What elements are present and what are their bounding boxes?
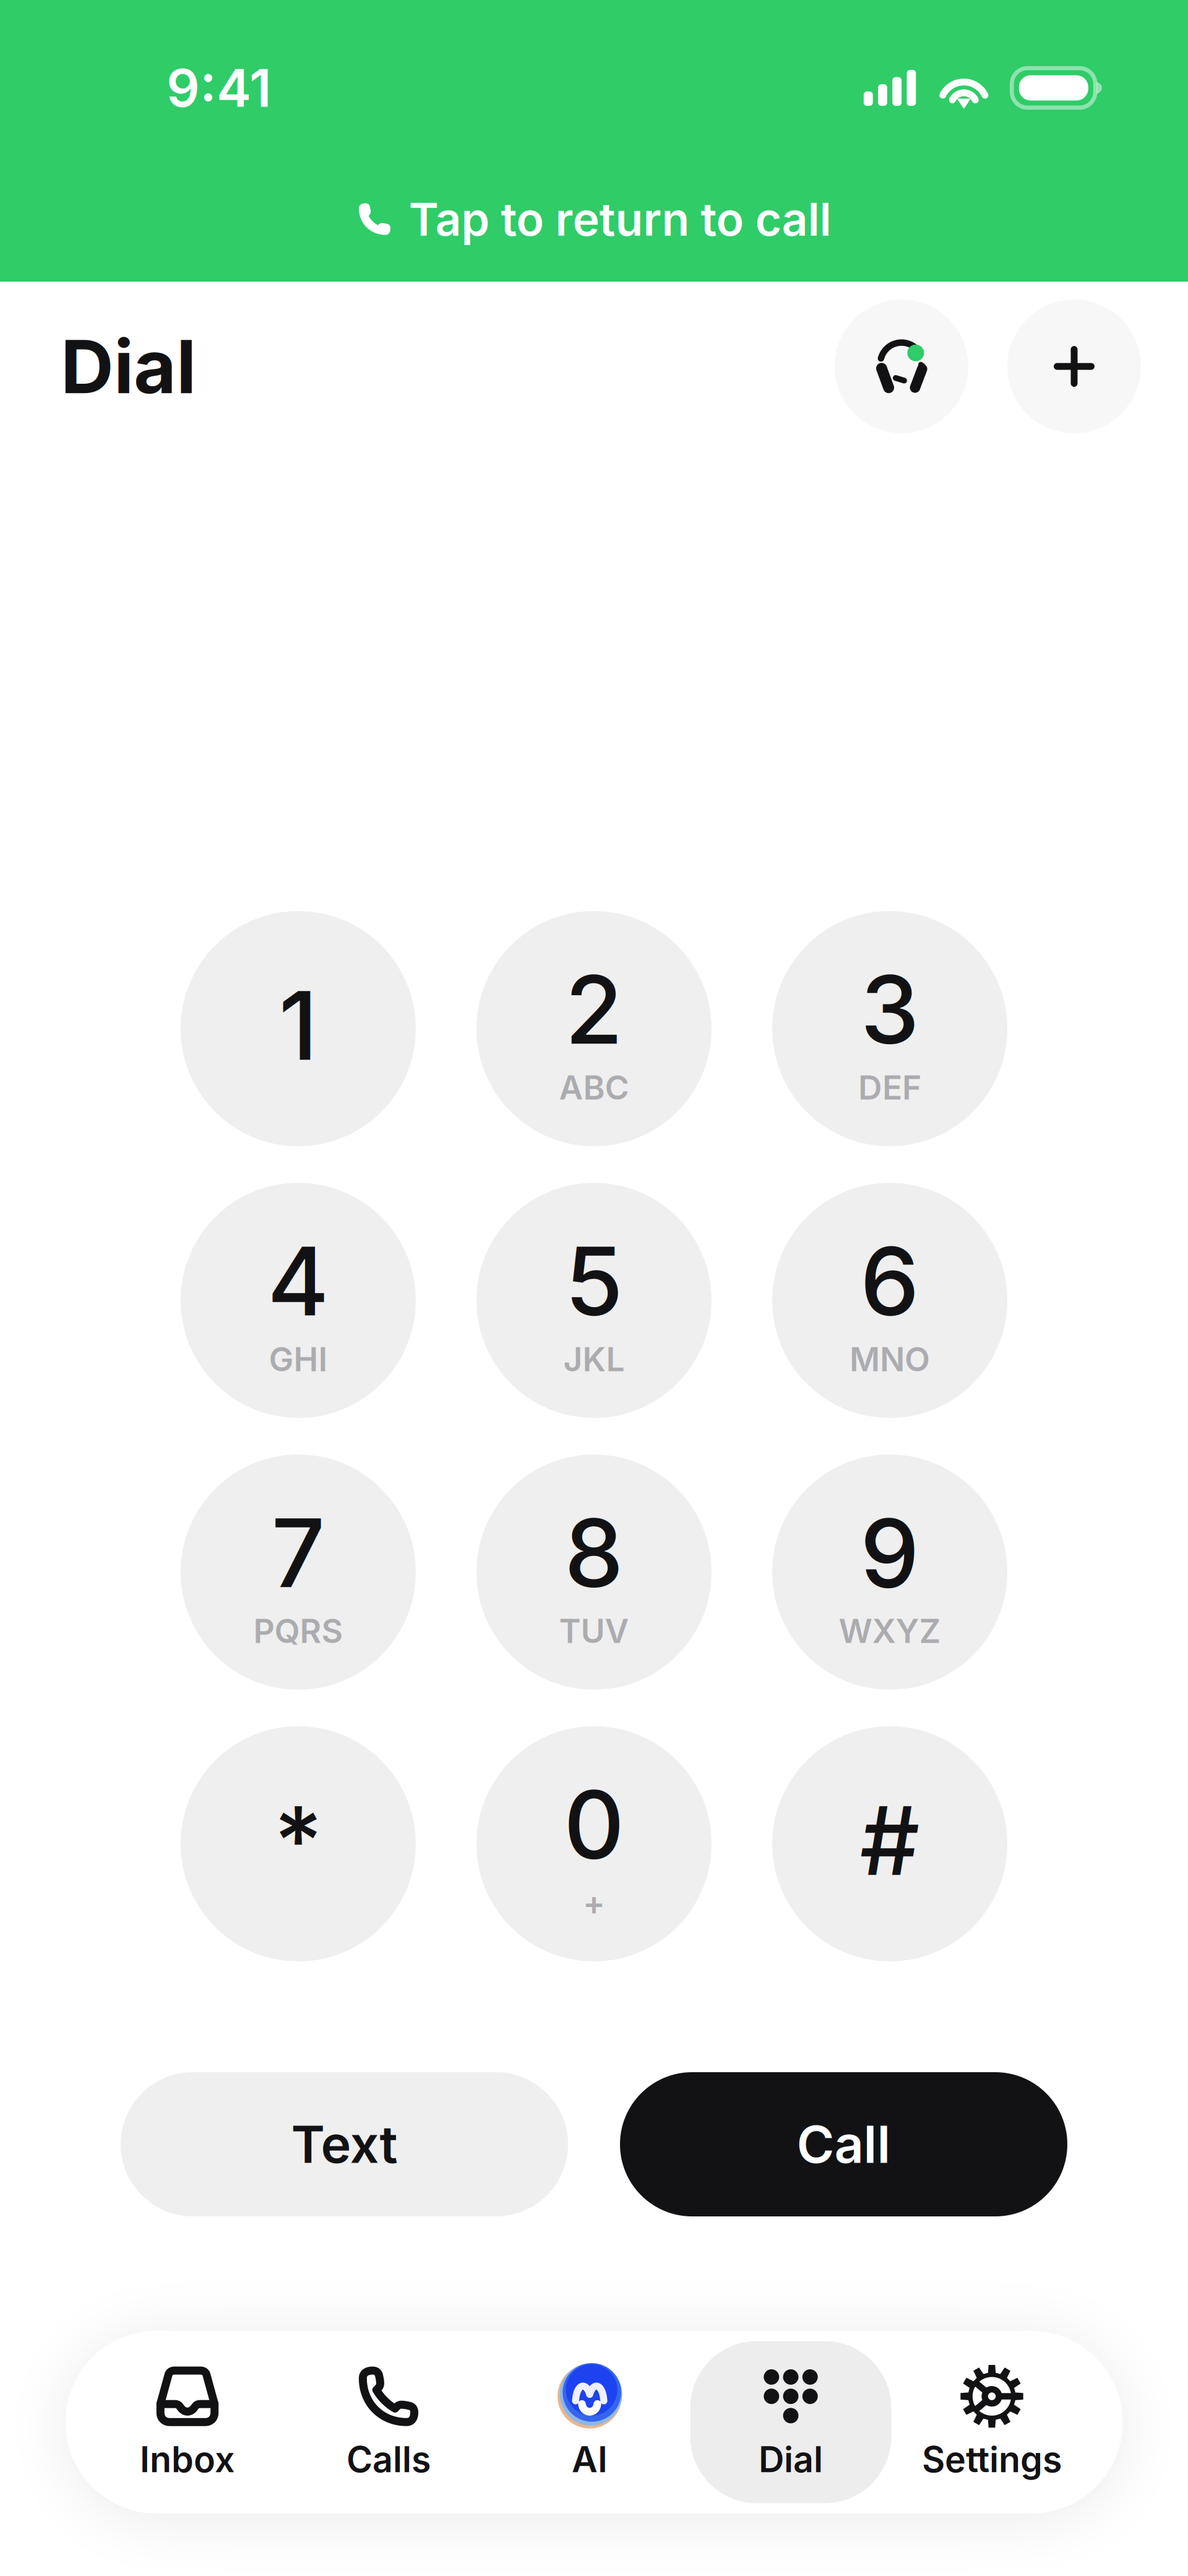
staticText: AI	[572, 2438, 608, 2480]
button[interactable]: 4	[181, 1183, 416, 1418]
button[interactable]: Add contact	[1007, 300, 1141, 433]
staticText: JKL	[563, 1340, 625, 1379]
staticText: 9:41	[166, 57, 272, 119]
staticText: MNO	[850, 1340, 930, 1379]
staticText: 4	[267, 1226, 329, 1337]
staticText: 6	[860, 1226, 919, 1337]
staticText: 5	[565, 1226, 623, 1337]
button[interactable]: Calls	[288, 2341, 489, 2503]
staticText: ABC	[559, 1068, 629, 1107]
staticText: *	[274, 1785, 323, 1896]
staticText: 0	[564, 1769, 624, 1880]
button[interactable]: 1	[181, 911, 416, 1146]
staticText: Call	[797, 2114, 891, 2174]
button[interactable]: 8	[476, 1454, 712, 1690]
staticText: #	[860, 1785, 920, 1896]
button[interactable]: 9	[772, 1454, 1007, 1690]
staticText: 8	[564, 1497, 624, 1608]
staticText: 3	[860, 954, 919, 1065]
staticText: GHI	[269, 1340, 328, 1379]
button[interactable]: 2	[476, 911, 712, 1146]
staticText: DEF	[858, 1068, 921, 1107]
button[interactable]: 6	[772, 1183, 1007, 1418]
button[interactable]: Text	[121, 2072, 568, 2216]
button[interactable]: Settings	[891, 2341, 1092, 2503]
staticText: Tap to return to call	[409, 192, 831, 246]
button[interactable]: Support	[835, 300, 968, 433]
staticText: Settings	[922, 2438, 1062, 2480]
staticText: TUV	[559, 1611, 629, 1650]
staticText: 2	[565, 954, 623, 1065]
staticText: Dial	[61, 323, 196, 410]
staticText: 9	[860, 1497, 919, 1608]
button[interactable]: Call	[620, 2072, 1067, 2216]
button[interactable]: #	[772, 1726, 1007, 1961]
button[interactable]: Dial	[690, 2341, 891, 2503]
staticText: Calls	[346, 2438, 431, 2480]
staticText: PQRS	[253, 1611, 343, 1650]
button[interactable]: *	[181, 1726, 416, 1961]
staticText: 7	[271, 1497, 325, 1608]
staticText: Text	[291, 2114, 398, 2174]
staticText: +	[583, 1883, 605, 1922]
button[interactable]: 7	[181, 1454, 416, 1690]
button[interactable]: AI	[489, 2341, 690, 2503]
staticText: Dial	[759, 2438, 823, 2480]
button[interactable]: 5	[476, 1183, 712, 1418]
staticText: WXYZ	[839, 1611, 941, 1650]
button[interactable]: Tap to return to call	[0, 185, 1188, 253]
staticText: Inbox	[140, 2438, 235, 2480]
button[interactable]: 3	[772, 911, 1007, 1146]
button[interactable]: 0	[476, 1726, 712, 1961]
button[interactable]: Inbox	[87, 2341, 288, 2503]
staticText: 1	[279, 970, 318, 1081]
